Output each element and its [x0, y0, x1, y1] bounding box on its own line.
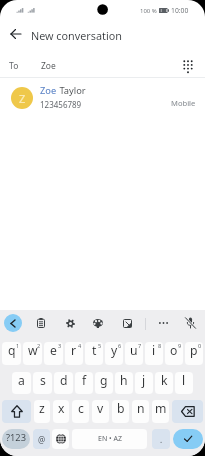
button[interactable]: i	[145, 342, 163, 365]
button[interactable]: Shift	[2, 400, 31, 423]
staticText: r	[71, 342, 77, 359]
staticText: 3	[58, 342, 62, 350]
staticText: EN • AZ	[98, 434, 122, 444]
button[interactable]: y	[105, 342, 123, 365]
staticText: q	[8, 342, 16, 359]
button[interactable]: z	[34, 400, 50, 423]
staticText: 100 %	[140, 7, 157, 15]
staticText: s	[40, 372, 46, 389]
staticText: d	[60, 372, 68, 389]
button[interactable]: m	[152, 400, 169, 423]
staticText: o	[170, 342, 178, 359]
staticText: e	[50, 342, 57, 359]
button[interactable]: Enter	[173, 429, 203, 449]
staticText: 123456789	[40, 99, 82, 110]
staticText: b	[117, 400, 125, 417]
staticText: v	[97, 400, 104, 417]
button[interactable]: a	[12, 372, 31, 394]
staticText: 0	[198, 342, 202, 350]
button[interactable]: Resize	[116, 312, 138, 334]
button[interactable]: t	[85, 342, 103, 365]
staticText: 2	[37, 342, 41, 350]
staticText: Taylor	[57, 84, 86, 97]
button[interactable]: d	[54, 372, 73, 394]
button[interactable]: f	[75, 372, 93, 394]
button[interactable]: l	[175, 372, 193, 394]
staticText: k	[161, 372, 168, 389]
button[interactable]: n	[132, 400, 149, 423]
button[interactable]: Theme	[87, 312, 109, 334]
button[interactable]: @	[33, 429, 50, 449]
staticText: Zoe	[41, 60, 56, 72]
button[interactable]: h	[115, 372, 133, 394]
staticText: p	[190, 342, 198, 359]
staticText: h	[120, 372, 128, 389]
staticText: t	[92, 342, 97, 359]
button[interactable]: w	[23, 342, 42, 365]
staticText: .	[160, 434, 163, 445]
staticText: y	[111, 342, 118, 359]
staticText: New conversation	[31, 28, 122, 43]
staticText: n	[137, 400, 145, 417]
staticText: Mobile	[171, 98, 196, 108]
staticText: Zoe	[40, 84, 57, 97]
button[interactable]: j	[135, 372, 153, 394]
button[interactable]: Voice input off	[179, 312, 201, 334]
staticText: @	[38, 434, 46, 445]
button[interactable]: u	[125, 342, 143, 365]
staticText: ?123	[6, 431, 26, 444]
staticText: g	[100, 372, 108, 389]
staticText: x	[58, 400, 65, 417]
staticText: 1	[16, 342, 20, 350]
staticText: 10:00	[171, 6, 189, 15]
button[interactable]: .	[152, 429, 170, 449]
button[interactable]: Backspace	[172, 400, 203, 423]
button[interactable]: q	[2, 342, 21, 365]
staticText: 8	[158, 342, 162, 350]
button[interactable]: v	[92, 400, 109, 423]
button[interactable]: r	[65, 342, 83, 365]
button[interactable]: Z	[0, 78, 205, 118]
button[interactable]: Settings	[59, 312, 81, 334]
staticText: l	[182, 372, 186, 389]
staticText: j	[142, 372, 146, 389]
button[interactable]: Clipboard	[30, 312, 52, 334]
button[interactable]: e	[44, 342, 63, 365]
staticText: u	[130, 342, 138, 359]
staticText: a	[18, 372, 25, 389]
staticText: z	[39, 400, 45, 417]
staticText: f	[82, 372, 87, 389]
staticText: 4	[78, 342, 82, 350]
button[interactable]: Change language	[52, 429, 69, 449]
button[interactable]: Back	[2, 20, 30, 48]
button[interactable]: EN • AZ	[72, 429, 147, 449]
button[interactable]: Dialpad	[175, 53, 201, 79]
button[interactable]: k	[155, 372, 173, 394]
staticText: m	[155, 400, 167, 417]
button[interactable]: ?123	[2, 429, 30, 449]
button[interactable]: c	[72, 400, 89, 423]
button[interactable]: x	[53, 400, 69, 423]
staticText: 6	[118, 342, 122, 350]
button[interactable]: g	[95, 372, 113, 394]
staticText: i	[152, 342, 156, 359]
button[interactable]: Expand toolbar	[4, 314, 22, 332]
staticText: 9	[178, 342, 182, 350]
staticText: w	[28, 342, 38, 359]
button[interactable]: b	[112, 400, 129, 423]
staticText: To	[9, 60, 19, 72]
staticText: c	[78, 400, 84, 417]
button[interactable]: o	[165, 342, 183, 365]
staticText: Z	[19, 91, 26, 106]
staticText: 5	[98, 342, 102, 350]
staticText: 7	[138, 342, 142, 350]
button[interactable]: p	[185, 342, 203, 365]
button[interactable]: More options	[152, 312, 174, 334]
button[interactable]: s	[33, 372, 52, 394]
